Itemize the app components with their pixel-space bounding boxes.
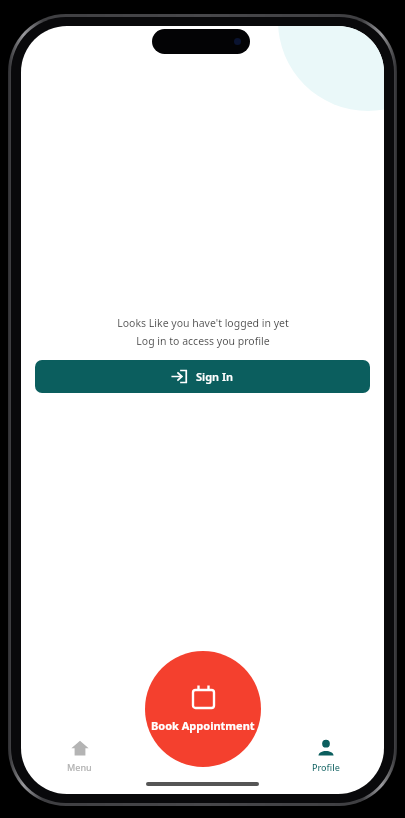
button[interactable]: Book Appointment [145,651,261,767]
button[interactable]: Sign In [35,360,370,393]
staticText: Profile [312,761,340,773]
button[interactable]: Profile [312,735,340,777]
staticText: Book Appointment [151,718,255,733]
button[interactable]: Menu [67,735,92,777]
staticText: Looks Like you have't logged in yet [117,316,289,330]
staticText: Sign In [196,369,234,384]
staticText: Menu [67,761,92,773]
staticText: Log in to access you profile [136,334,270,348]
